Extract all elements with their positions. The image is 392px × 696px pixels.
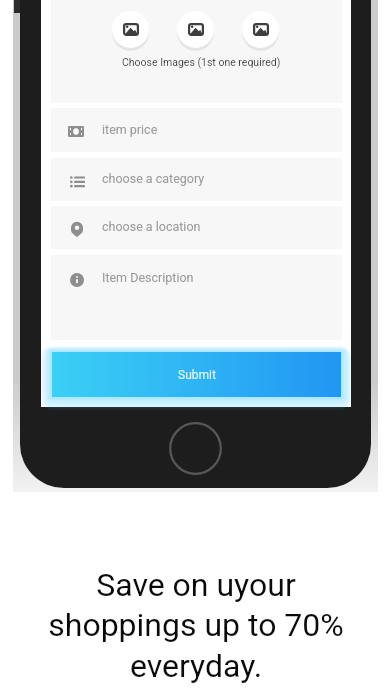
staticText: Save on uyour shoppings up to 70% everyd…: [48, 566, 344, 685]
button[interactable]: Choose image: [177, 11, 214, 48]
button[interactable]: Submit: [52, 352, 341, 397]
button[interactable]: Choose image: [112, 11, 149, 48]
staticText: Choose Images (1st one required): [122, 56, 281, 68]
button[interactable]: choose a category: [51, 158, 342, 201]
button[interactable]: Choose image: [242, 11, 279, 48]
staticText: choose a location: [102, 219, 201, 234]
staticText: Submit: [178, 368, 216, 382]
button[interactable]: Item Description: [51, 255, 342, 340]
button[interactable]: choose a location: [51, 206, 342, 249]
button[interactable]: item price: [51, 108, 342, 152]
staticText: choose a category: [102, 171, 205, 186]
staticText: Item Description: [102, 270, 194, 285]
staticText: item price: [102, 122, 158, 137]
